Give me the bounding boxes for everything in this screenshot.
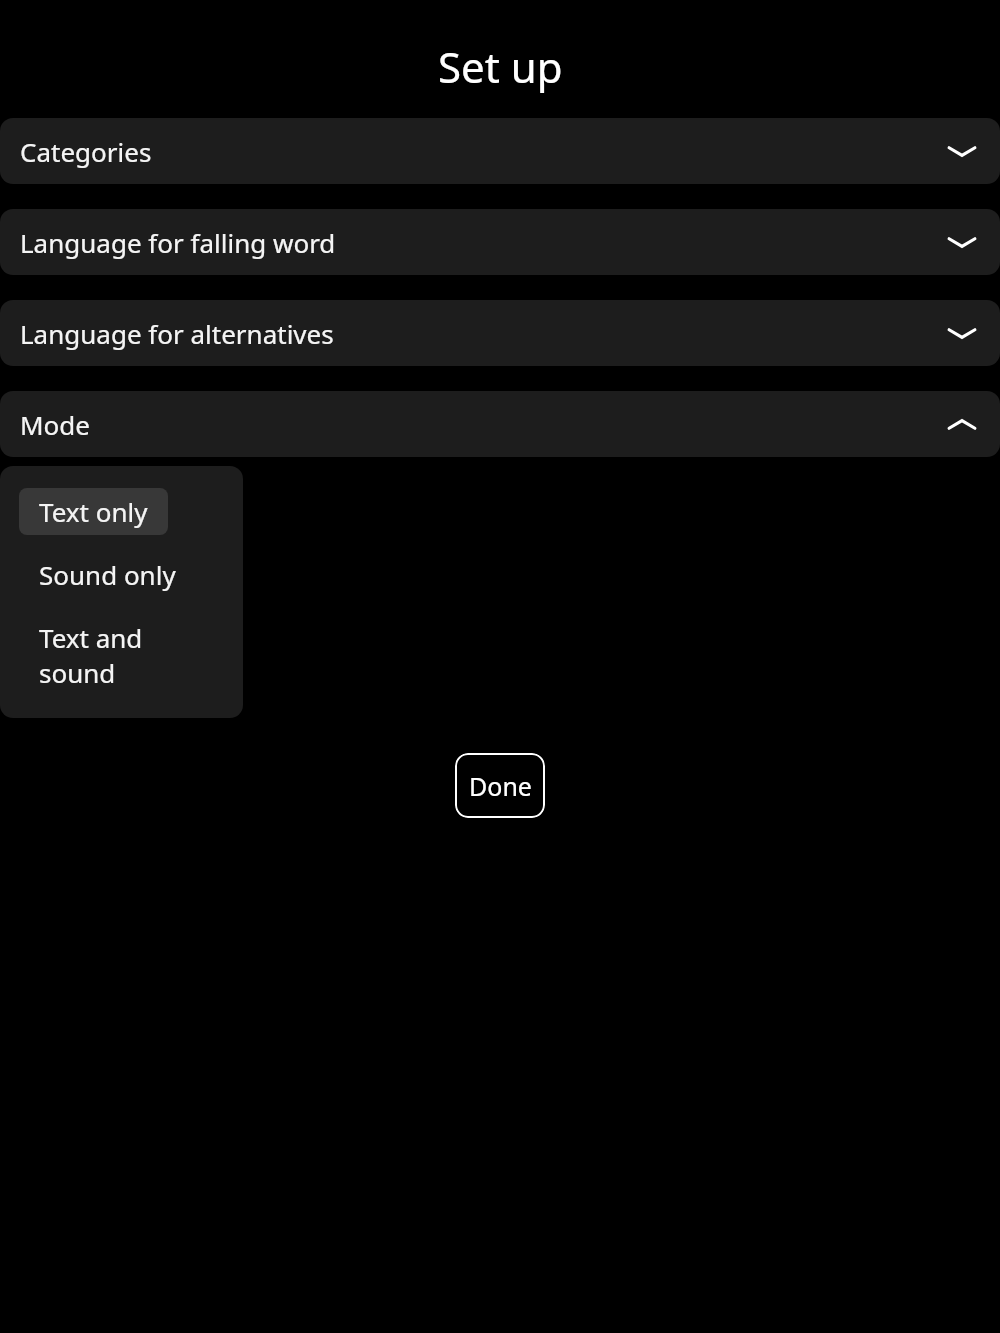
- staticText: Text and sound: [39, 620, 223, 690]
- other: Expand Language for falling word: [947, 234, 977, 251]
- other: Expand Categories: [947, 143, 977, 160]
- other: Expand Language for alternatives: [947, 325, 977, 342]
- staticText: Set up: [438, 38, 563, 95]
- button[interactable]: Done: [455, 753, 545, 818]
- button[interactable]: Categories: [0, 118, 1000, 184]
- button[interactable]: Text and sound: [19, 614, 243, 696]
- button[interactable]: Language for falling word: [0, 209, 1000, 275]
- button[interactable]: Sound only: [19, 551, 196, 598]
- button[interactable]: Mode: [0, 391, 1000, 457]
- other: Collapse Mode: [947, 416, 977, 433]
- staticText: Mode: [20, 407, 90, 442]
- staticText: Categories: [20, 134, 152, 169]
- button[interactable]: Text only: [19, 488, 168, 535]
- staticText: Language for alternatives: [20, 316, 334, 351]
- staticText: Sound only: [39, 557, 176, 592]
- button[interactable]: Language for alternatives: [0, 300, 1000, 366]
- staticText: Done: [469, 769, 532, 803]
- staticText: Text only: [39, 494, 148, 529]
- staticText: Language for falling word: [20, 225, 336, 260]
